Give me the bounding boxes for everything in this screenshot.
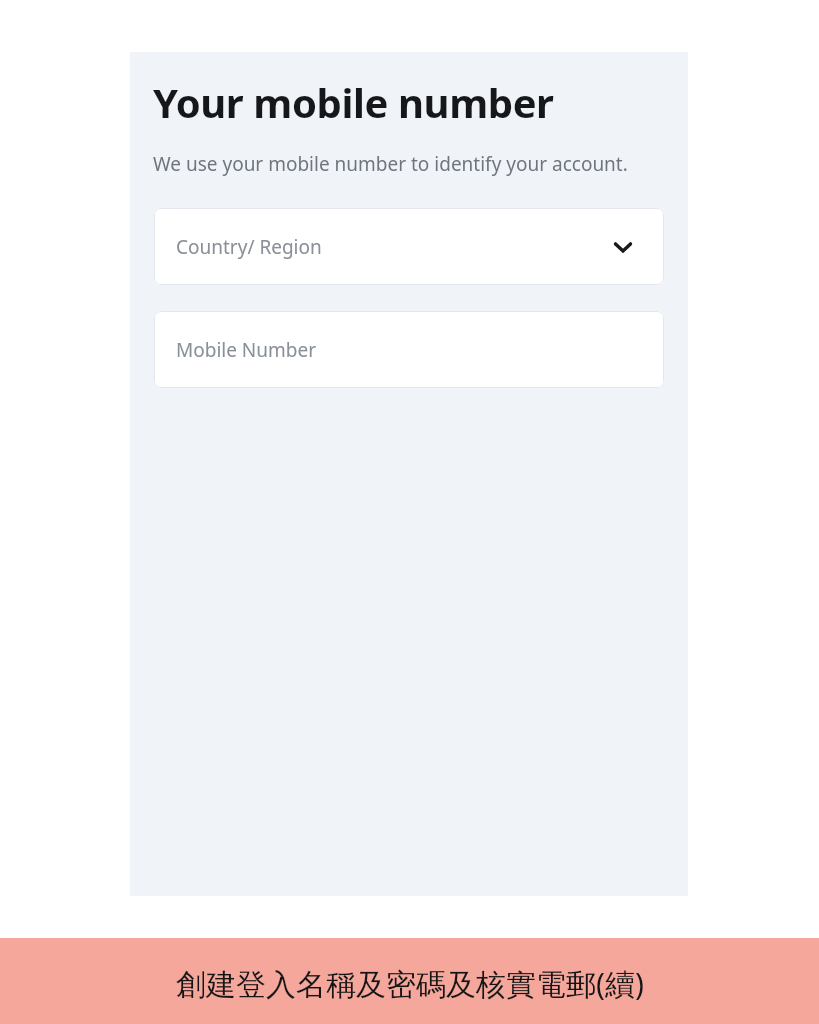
staticText: Country/ Region [176,234,322,260]
button[interactable]: Mobile Number [154,311,664,388]
staticText: Your mobile number [153,75,554,129]
button[interactable]: Select country or region [154,208,664,285]
staticText: 創建登入名稱及密碼及核實電郵(續) [176,963,644,1004]
staticText: We use your mobile number to identify yo… [153,151,628,177]
staticText: Mobile Number [176,337,317,363]
